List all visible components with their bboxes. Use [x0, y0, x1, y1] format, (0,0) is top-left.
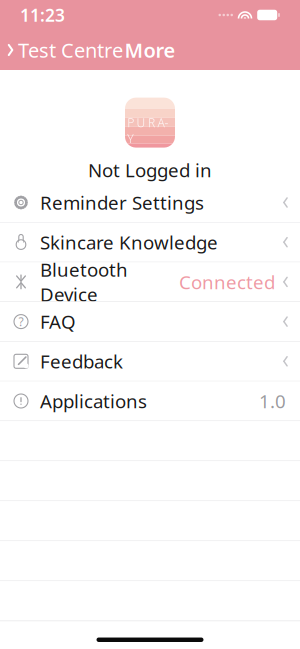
staticText: Connected: [179, 269, 275, 294]
staticText: ?: [18, 314, 23, 329]
button[interactable]: Reminder Settings: [0, 183, 300, 223]
staticText: More: [124, 37, 175, 63]
staticText: Test Centre: [18, 37, 123, 63]
staticText: 11:23: [20, 3, 65, 26]
button[interactable]: Applications: [0, 381, 300, 421]
staticText: Not Logged in: [88, 158, 212, 182]
staticText: Bluetooth Device: [40, 257, 128, 307]
staticText: Skincare Knowledge: [40, 230, 218, 255]
staticText: Applications: [40, 389, 147, 413]
staticText: 1.0: [259, 389, 286, 413]
button[interactable]: Feedback: [0, 342, 300, 381]
staticText: Feedback: [40, 349, 123, 374]
staticText: FAQ: [40, 309, 76, 334]
button[interactable]: ?: [0, 302, 300, 342]
button[interactable]: Test Centre: [0, 31, 123, 69]
staticText: Reminder Settings: [40, 190, 204, 215]
button[interactable]: Skincare Knowledge: [0, 223, 300, 262]
button[interactable]: Bluetooth Device: [0, 262, 300, 302]
staticText: PURAY: [127, 115, 173, 130]
